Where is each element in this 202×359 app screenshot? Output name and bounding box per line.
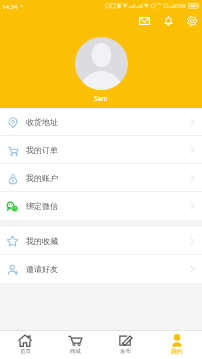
staticText: 14:34 bbox=[2, 3, 18, 11]
staticText: 邀请好友 bbox=[26, 264, 58, 274]
staticText: 绑定微信 bbox=[26, 201, 58, 211]
staticText: 收货地址 bbox=[26, 117, 58, 127]
staticText: 商城 bbox=[70, 348, 81, 355]
button[interactable]: Settings bbox=[184, 13, 200, 29]
staticText: 发布 bbox=[120, 348, 131, 355]
button[interactable]: 发布 bbox=[100, 330, 151, 359]
staticText: 我的订单 bbox=[26, 145, 58, 155]
staticText: 我的 bbox=[171, 348, 182, 355]
button[interactable]: Messages bbox=[136, 13, 152, 29]
staticText: Sam bbox=[94, 94, 108, 103]
staticText: 首页 bbox=[20, 348, 31, 355]
button[interactable]: 商城 bbox=[50, 330, 100, 359]
button[interactable]: 我的 bbox=[151, 330, 202, 359]
button[interactable]: 我的收藏 bbox=[0, 227, 202, 255]
button[interactable]: 我的账户 bbox=[0, 164, 202, 192]
button[interactable]: 绑定微信 bbox=[0, 192, 202, 220]
button[interactable]: 收货地址 bbox=[0, 108, 202, 136]
staticText: 70% bbox=[176, 3, 186, 10]
button[interactable]: Notifications bbox=[160, 13, 176, 29]
button[interactable]: 我的订单 bbox=[0, 136, 202, 164]
button[interactable]: 首页 bbox=[0, 330, 50, 359]
staticText: 我的收藏 bbox=[26, 236, 58, 246]
staticText: 我的账户 bbox=[26, 173, 58, 183]
button[interactable]: 邀请好友 bbox=[0, 255, 202, 283]
